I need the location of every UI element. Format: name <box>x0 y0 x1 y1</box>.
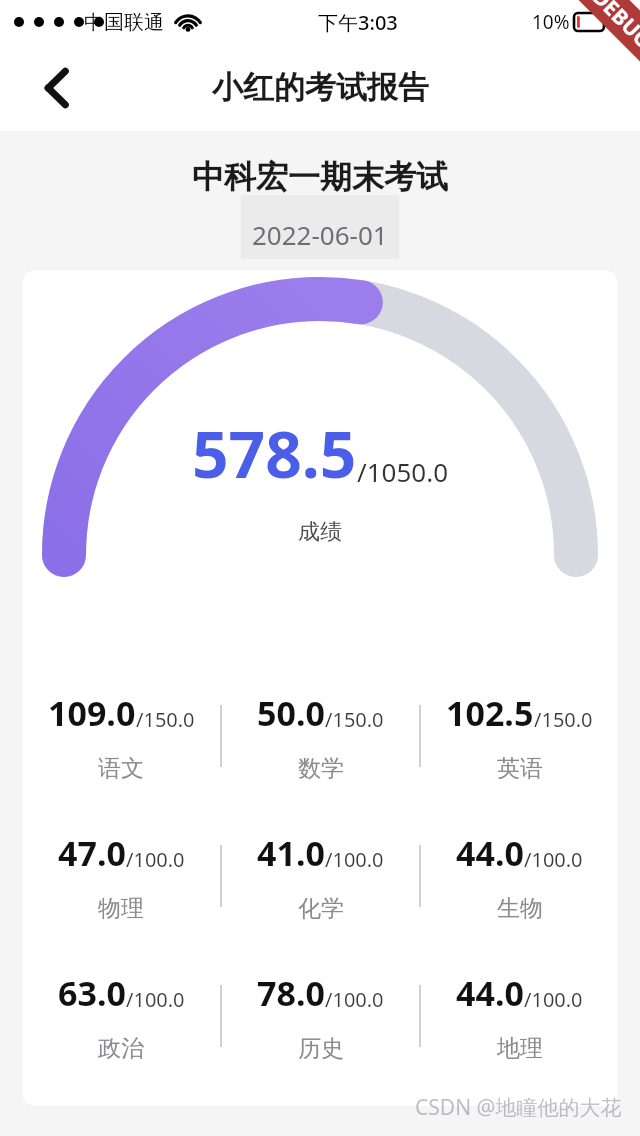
staticText: 10% <box>532 9 570 35</box>
button[interactable]: 63.0 <box>22 964 220 1069</box>
button[interactable]: 47.0 <box>22 824 220 929</box>
staticText: 物理 <box>98 894 144 923</box>
staticText: 成绩 <box>298 518 342 546</box>
staticText: /150.0 <box>534 706 593 733</box>
staticText: 47.0 <box>58 830 126 876</box>
button[interactable]: 44.0 <box>421 964 618 1069</box>
button[interactable]: 78.0 <box>222 964 419 1069</box>
staticText: 44.0 <box>456 970 524 1016</box>
staticText: DEBUG <box>586 0 640 55</box>
staticText: 109.0 <box>48 690 136 736</box>
button[interactable]: Back <box>26 57 88 119</box>
staticText: 中科宏一期末考试 <box>192 157 448 197</box>
staticText: 2022-06-01 <box>252 217 388 252</box>
staticText: /100.0 <box>325 986 384 1013</box>
staticText: CSDN @地瞳他的大花 <box>415 1093 622 1122</box>
staticText: 63.0 <box>58 970 126 1016</box>
staticText: /100.0 <box>524 846 583 873</box>
staticText: 41.0 <box>257 830 325 876</box>
staticText: /100.0 <box>524 986 583 1013</box>
staticText: /150.0 <box>136 706 195 733</box>
staticText: /100.0 <box>126 986 185 1013</box>
button[interactable]: 102.5 <box>421 684 618 789</box>
staticText: 化学 <box>298 894 344 923</box>
staticText: 50.0 <box>257 690 325 736</box>
staticText: /1050.0 <box>357 454 449 489</box>
staticText: 78.0 <box>257 970 325 1016</box>
staticText: 44.0 <box>456 830 524 876</box>
button[interactable]: 44.0 <box>421 824 618 929</box>
staticText: /150.0 <box>325 706 384 733</box>
staticText: 中国联通 <box>84 10 164 35</box>
staticText: 语文 <box>98 754 144 783</box>
staticText: 生物 <box>497 894 543 923</box>
staticText: 历史 <box>298 1034 344 1063</box>
button[interactable]: 41.0 <box>222 824 419 929</box>
staticText: 地理 <box>497 1034 543 1063</box>
staticText: 英语 <box>497 754 543 783</box>
button[interactable]: 109.0 <box>22 684 220 789</box>
staticText: 578.5 <box>192 410 357 497</box>
staticText: 小红的考试报告 <box>212 68 429 107</box>
staticText: 数学 <box>298 754 344 783</box>
staticText: 下午3:03 <box>318 9 398 36</box>
button[interactable]: 50.0 <box>222 684 419 789</box>
staticText: 政治 <box>98 1034 144 1063</box>
staticText: /100.0 <box>126 846 185 873</box>
staticText: /100.0 <box>325 846 384 873</box>
staticText: 102.5 <box>446 690 534 736</box>
